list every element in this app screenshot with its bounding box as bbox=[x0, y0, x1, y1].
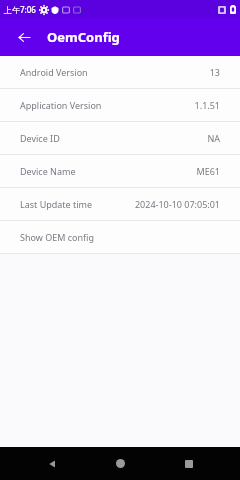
button[interactable]: Last Update time bbox=[0, 188, 240, 220]
staticText: NA bbox=[207, 132, 220, 144]
button[interactable]: Application Version bbox=[0, 89, 240, 121]
button[interactable]: Device ID bbox=[0, 122, 240, 154]
staticText: Device Name bbox=[20, 165, 76, 177]
staticText: Device ID bbox=[20, 132, 60, 144]
button[interactable]: Back bbox=[10, 23, 38, 51]
staticText: 上午7:06 bbox=[4, 4, 36, 15]
staticText: 1.1.51 bbox=[194, 99, 220, 111]
button[interactable]: Device Name bbox=[0, 155, 240, 187]
button[interactable]: Home bbox=[103, 447, 137, 480]
staticText: Android Version bbox=[20, 66, 88, 78]
button[interactable]: Recent apps bbox=[172, 447, 206, 480]
staticText: ME61 bbox=[196, 165, 220, 177]
staticText: 13 bbox=[209, 66, 220, 78]
staticText: Application Version bbox=[20, 99, 102, 111]
staticText: Last Update time bbox=[20, 198, 93, 210]
staticText: Show OEM config bbox=[20, 231, 94, 243]
button[interactable]: Back bbox=[35, 447, 69, 480]
staticText: 2024-10-10 07:05:01 bbox=[134, 198, 220, 210]
staticText: OemConfig bbox=[47, 28, 120, 46]
button[interactable]: Android Version bbox=[0, 56, 240, 88]
button[interactable]: Show OEM config bbox=[0, 221, 240, 253]
